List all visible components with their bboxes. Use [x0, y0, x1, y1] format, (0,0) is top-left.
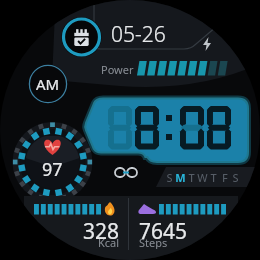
staticText: M: [175, 170, 186, 185]
staticText: T: [210, 170, 217, 185]
staticText: 05-26: [111, 20, 166, 49]
staticText: 328: [83, 217, 120, 239]
staticText: S: [232, 170, 239, 185]
button[interactable]: S: [164, 169, 247, 185]
button[interactable]: AM: [28, 64, 68, 104]
staticText: F: [222, 170, 228, 185]
button[interactable]: 97: [30, 156, 74, 182]
staticText: 97: [42, 157, 63, 182]
button[interactable]: 328: [56, 217, 120, 239]
staticText: 7645: [139, 217, 188, 239]
staticText: W: [197, 170, 208, 185]
staticText: AM: [36, 74, 60, 94]
staticText: S: [166, 170, 173, 185]
staticText: Steps: [139, 235, 168, 249]
staticText: Power: [101, 62, 134, 77]
button[interactable]: 7645: [139, 217, 199, 239]
staticText: T: [188, 170, 195, 185]
staticText: Kcal: [98, 235, 120, 249]
